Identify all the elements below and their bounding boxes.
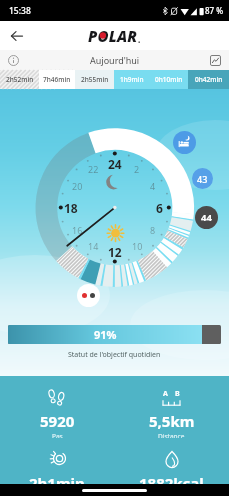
staticText: 91% xyxy=(94,327,117,342)
staticText: 1882kcal xyxy=(139,473,204,484)
staticText: 5920 xyxy=(40,411,75,431)
staticText: 2h1min xyxy=(29,473,85,484)
button[interactable]: 2h1min xyxy=(0,438,114,484)
staticText: 16 xyxy=(72,224,83,236)
staticText: 15:38 xyxy=(9,5,31,17)
staticText: 6 xyxy=(156,200,163,216)
staticText: 24 xyxy=(108,156,122,172)
button[interactable]: 91% xyxy=(8,325,221,344)
staticText: 0h10min xyxy=(155,75,183,84)
button[interactable]: 0h10min xyxy=(150,70,188,89)
button[interactable]: Charts xyxy=(206,51,224,69)
staticText: 20 xyxy=(72,180,83,192)
staticText: 12 xyxy=(108,244,122,260)
button[interactable]: Back xyxy=(4,23,30,49)
staticText: 7h46min xyxy=(43,75,71,84)
staticText: Pas xyxy=(52,432,63,438)
button[interactable]: Sleep xyxy=(173,131,196,154)
staticText: 2 xyxy=(134,163,140,175)
staticText: . xyxy=(138,34,141,45)
button[interactable]: 1882kcal xyxy=(114,438,229,484)
staticText: 0h42min xyxy=(195,75,223,84)
staticText: POLAR xyxy=(88,26,138,46)
staticText: Aujourd'hui xyxy=(90,54,140,66)
staticText: 2h55min xyxy=(81,75,109,84)
button[interactable]: 1h9min xyxy=(114,70,150,89)
staticText: 22 xyxy=(88,163,99,175)
staticText: 4 xyxy=(150,180,156,192)
staticText: Statut de l'objectif quotidien xyxy=(68,350,161,360)
button[interactable]: Heart rate 43 xyxy=(192,168,213,189)
staticText: 87 % xyxy=(205,5,224,16)
button[interactable]: Markers xyxy=(77,284,100,307)
button[interactable]: 5920 xyxy=(0,376,114,438)
staticText: 8 xyxy=(150,224,156,236)
staticText: 44 xyxy=(201,211,212,224)
staticText: 10 xyxy=(132,240,143,252)
staticText: 1h9min xyxy=(120,75,144,84)
staticText: A xyxy=(163,389,168,399)
button[interactable]: Information xyxy=(4,51,22,69)
button[interactable]: 7h46min xyxy=(39,70,75,89)
staticText: 5,5km xyxy=(149,411,195,431)
button[interactable]: 0h42min xyxy=(188,70,229,89)
staticText: 43 xyxy=(197,173,208,185)
button[interactable]: A xyxy=(114,376,229,438)
button[interactable]: Value 44 xyxy=(195,206,218,229)
button[interactable]: 2h55min xyxy=(75,70,114,89)
staticText: B xyxy=(175,389,180,399)
staticText: 14 xyxy=(88,240,99,252)
staticText: 18 xyxy=(64,200,78,216)
staticText: Distance xyxy=(158,432,185,438)
staticText: 2h52min xyxy=(6,75,34,84)
button[interactable]: 2h52min xyxy=(0,70,39,89)
